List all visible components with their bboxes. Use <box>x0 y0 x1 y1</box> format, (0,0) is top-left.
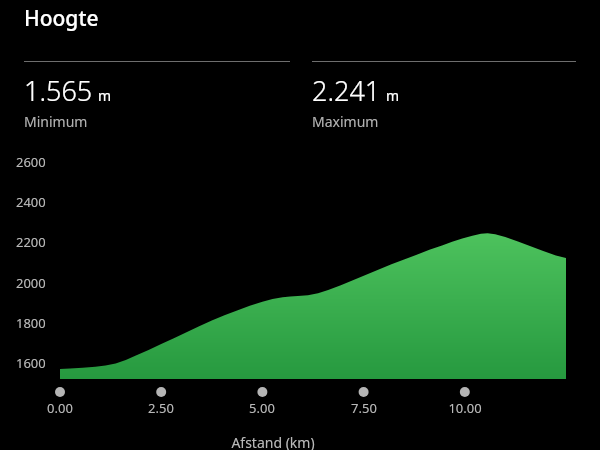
staticText: Afstand (km) <box>0 433 573 450</box>
staticText: 2000 <box>16 274 46 292</box>
staticText: 1800 <box>16 314 46 332</box>
staticText: 2600 <box>16 153 46 171</box>
staticText: 2.50 <box>135 399 187 417</box>
staticText: 2.241 <box>312 72 381 109</box>
staticText: 2200 <box>16 233 46 251</box>
staticText: 2400 <box>16 193 46 211</box>
button[interactable]: Elevation profile chart <box>0 153 600 450</box>
staticText: m <box>98 86 112 105</box>
staticText: 0.00 <box>34 399 86 417</box>
button[interactable]: 1.565 <box>24 61 290 131</box>
staticText: Hoogte <box>24 4 99 33</box>
button[interactable]: 2.241 <box>312 61 576 131</box>
staticText: Minimum <box>24 112 88 131</box>
staticText: 5.00 <box>236 399 288 417</box>
staticText: 1.565 <box>24 72 93 109</box>
staticText: 7.50 <box>338 399 390 417</box>
staticText: Maximum <box>312 112 379 131</box>
staticText: 1600 <box>16 354 46 372</box>
staticText: m <box>386 86 400 105</box>
staticText: 10.00 <box>439 399 491 417</box>
